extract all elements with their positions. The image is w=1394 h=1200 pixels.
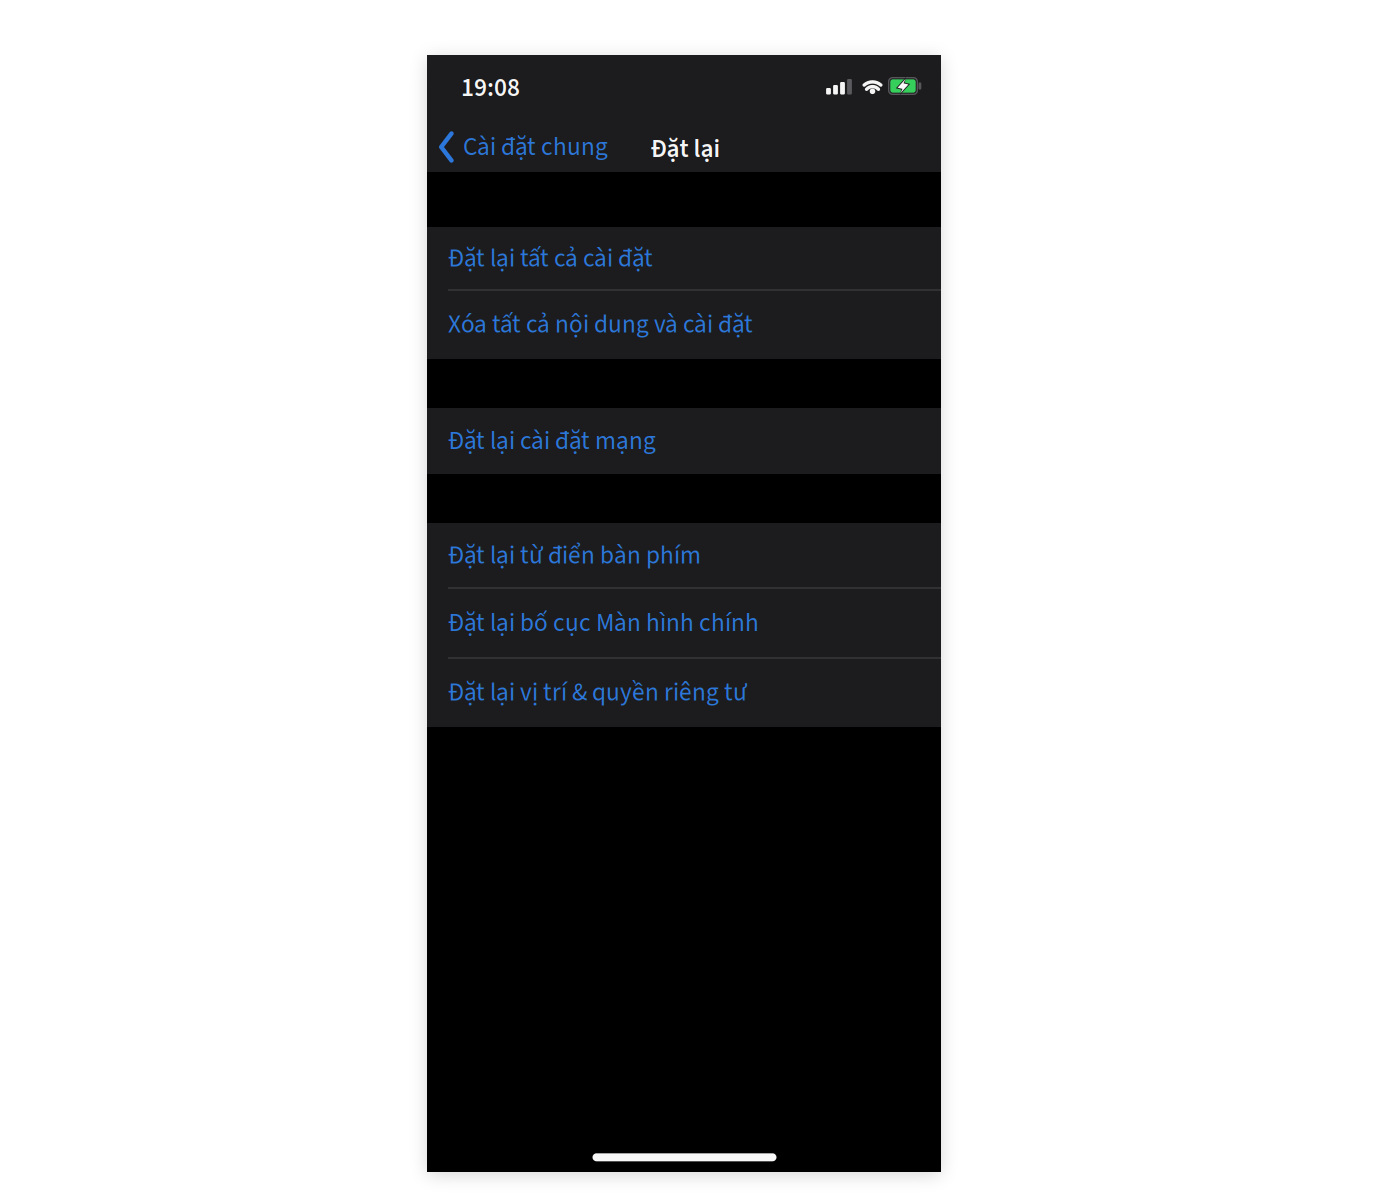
button[interactable]: Đặt lại bố cục Màn hình chính <box>427 588 941 658</box>
staticText: 19:08 <box>461 70 520 106</box>
staticText: Đặt lại tất cả cài đặt <box>448 241 653 276</box>
button[interactable]: Đặt lại từ điển bàn phím <box>427 523 941 588</box>
button[interactable]: Quay lại Cài đặt chung <box>439 119 739 175</box>
button[interactable]: Đặt lại cài đặt mạng <box>427 408 941 474</box>
button[interactable]: Xóa tất cả nội dung và cài đặt <box>427 290 941 359</box>
button[interactable]: Đặt lại tất cả cài đặt <box>427 227 941 290</box>
staticText: Đặt lại cài đặt mạng <box>448 423 656 459</box>
staticText: Đặt lại vị trí & quyền riêng tư <box>448 675 747 710</box>
staticText: Cài đặt chung <box>463 129 608 165</box>
button[interactable]: Đặt lại vị trí & quyền riêng tư <box>427 658 941 727</box>
staticText: Đặt lại <box>650 131 720 167</box>
staticText: Đặt lại bố cục Màn hình chính <box>448 605 759 641</box>
staticText: Xóa tất cả nội dung và cài đặt <box>448 307 753 342</box>
staticText: Đặt lại từ điển bàn phím <box>448 538 701 573</box>
